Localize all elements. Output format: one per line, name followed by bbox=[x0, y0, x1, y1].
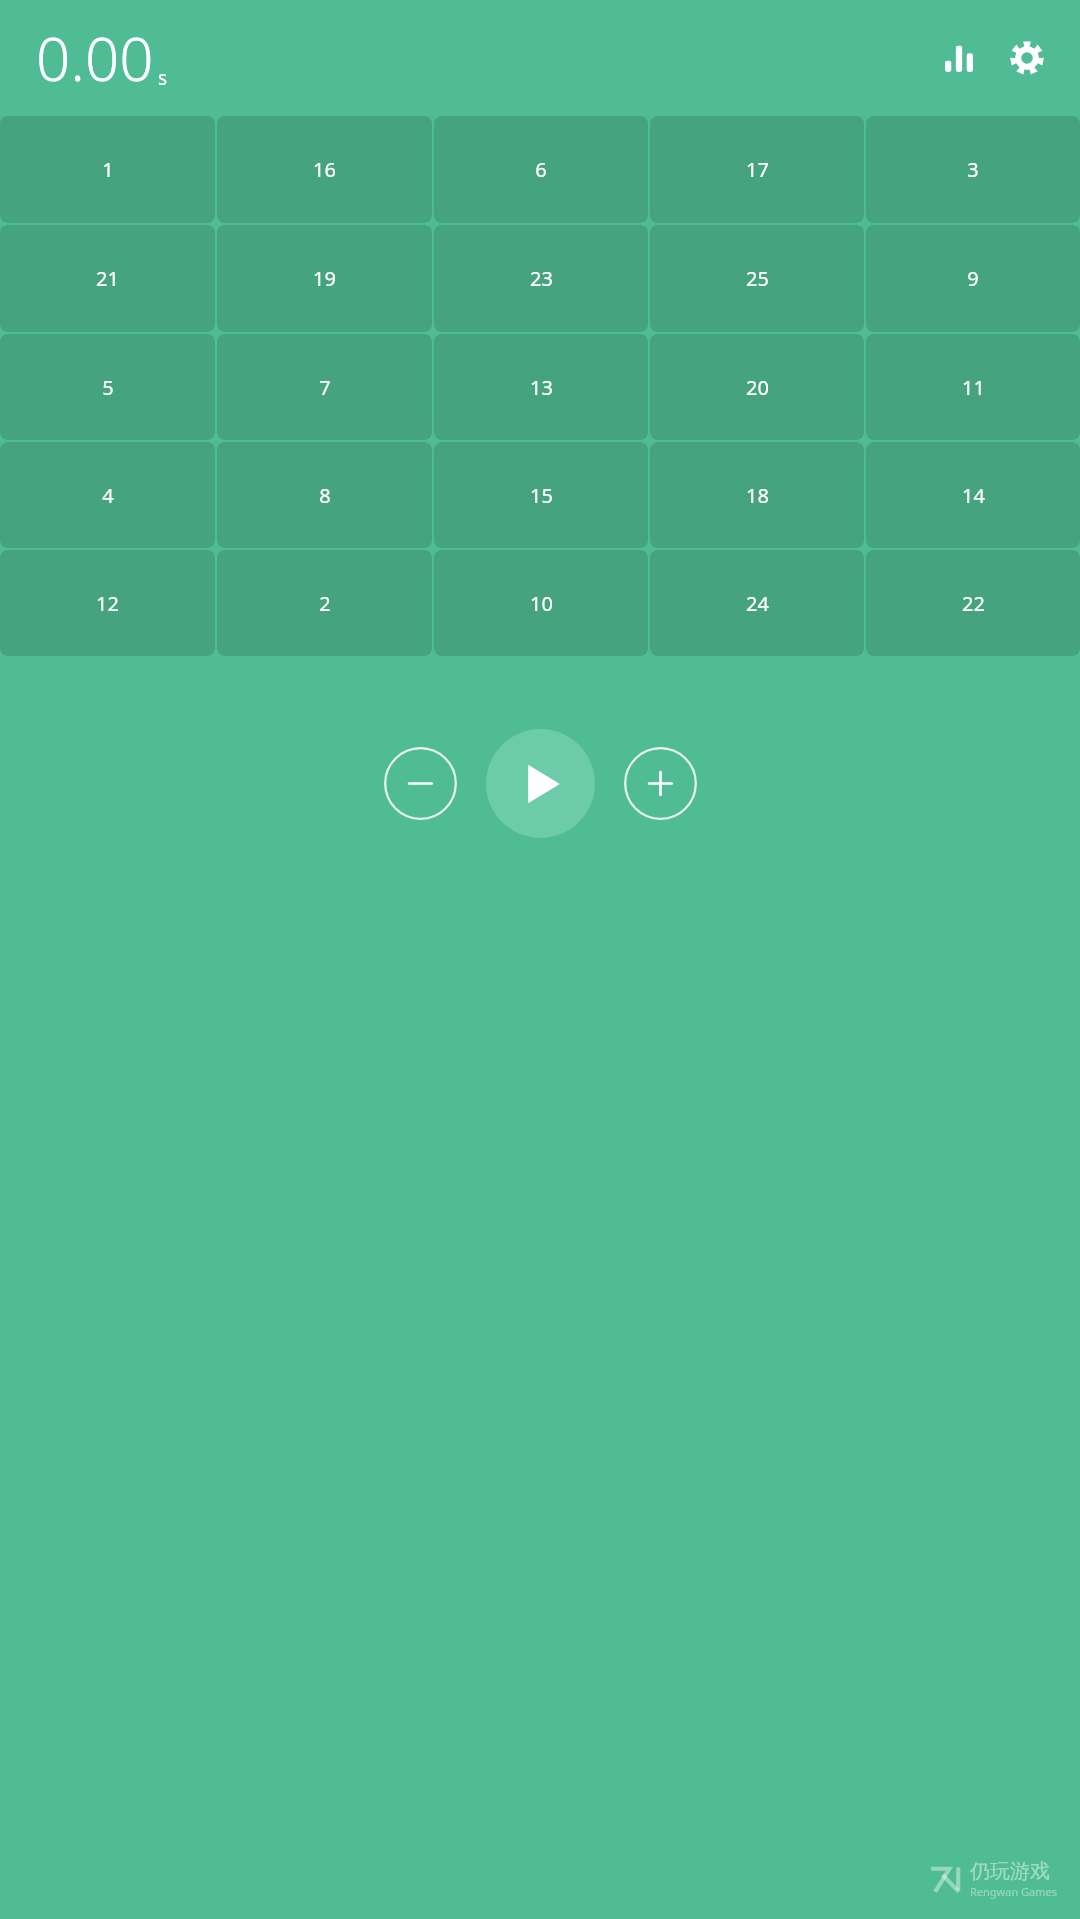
staticText: 16 bbox=[313, 156, 336, 183]
staticText: 10 bbox=[530, 590, 553, 617]
button[interactable]: 22 bbox=[866, 550, 1080, 656]
staticText: 8 bbox=[319, 482, 331, 509]
staticText: 4 bbox=[102, 482, 114, 509]
button[interactable]: 15 bbox=[434, 442, 648, 548]
button[interactable]: 10 bbox=[434, 550, 648, 656]
staticText: 1 bbox=[102, 156, 114, 183]
staticText: 15 bbox=[530, 482, 553, 509]
button[interactable]: 18 bbox=[650, 442, 864, 548]
staticText: 9 bbox=[967, 265, 979, 292]
button[interactable]: 16 bbox=[217, 116, 432, 223]
button[interactable]: 11 bbox=[866, 334, 1080, 440]
button[interactable]: 6 bbox=[434, 116, 648, 223]
button[interactable]: Increase bbox=[624, 747, 697, 820]
staticText: 7 bbox=[319, 374, 331, 401]
button[interactable]: 5 bbox=[0, 334, 215, 440]
button[interactable]: Statistics bbox=[936, 35, 982, 81]
button[interactable]: 2 bbox=[217, 550, 432, 656]
staticText: 14 bbox=[962, 482, 985, 509]
button[interactable]: 14 bbox=[866, 442, 1080, 548]
staticText: 11 bbox=[962, 374, 985, 401]
staticText: 12 bbox=[96, 590, 119, 617]
staticText: 21 bbox=[96, 265, 119, 292]
button[interactable]: 8 bbox=[217, 442, 432, 548]
button[interactable]: 20 bbox=[650, 334, 864, 440]
staticText: 6 bbox=[535, 156, 547, 183]
staticText: 3 bbox=[967, 156, 979, 183]
button[interactable]: Settings bbox=[1002, 33, 1052, 83]
button[interactable]: 12 bbox=[0, 550, 215, 656]
staticText: Rengwan Games bbox=[970, 1884, 1058, 1899]
staticText: 仍玩游戏 bbox=[970, 1859, 1050, 1884]
staticText: s bbox=[158, 65, 168, 91]
button[interactable]: 9 bbox=[866, 225, 1080, 332]
button[interactable]: 21 bbox=[0, 225, 215, 332]
staticText: 23 bbox=[530, 265, 553, 292]
button[interactable]: Decrease bbox=[384, 747, 457, 820]
staticText: 19 bbox=[313, 265, 336, 292]
button[interactable]: 24 bbox=[650, 550, 864, 656]
staticText: 25 bbox=[746, 265, 769, 292]
button[interactable]: 25 bbox=[650, 225, 864, 332]
staticText: 22 bbox=[962, 590, 985, 617]
button[interactable]: 19 bbox=[217, 225, 432, 332]
staticText: 20 bbox=[746, 374, 769, 401]
button[interactable]: 23 bbox=[434, 225, 648, 332]
button[interactable]: 17 bbox=[650, 116, 864, 223]
staticText: 18 bbox=[746, 482, 769, 509]
button[interactable]: Start bbox=[486, 729, 595, 838]
button[interactable]: 4 bbox=[0, 442, 215, 548]
button[interactable]: 13 bbox=[434, 334, 648, 440]
button[interactable]: 3 bbox=[866, 116, 1080, 223]
staticText: 13 bbox=[530, 374, 553, 401]
staticText: 24 bbox=[746, 590, 769, 617]
staticText: 2 bbox=[319, 590, 331, 617]
staticText: 0.00 bbox=[36, 17, 154, 99]
button[interactable]: 1 bbox=[0, 116, 215, 223]
staticText: 17 bbox=[746, 156, 769, 183]
staticText: 5 bbox=[102, 374, 114, 401]
button[interactable]: 7 bbox=[217, 334, 432, 440]
